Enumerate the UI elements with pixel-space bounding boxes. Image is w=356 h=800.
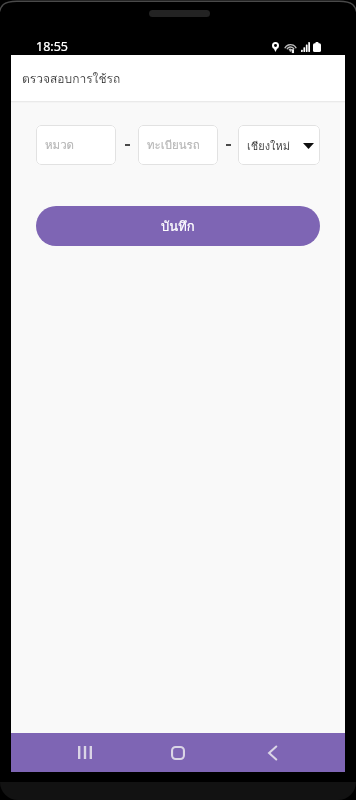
button[interactable]: Back xyxy=(225,733,319,772)
button[interactable]: ทะเบียนรถ xyxy=(138,125,218,165)
staticText: ทะเบียนรถ xyxy=(147,136,200,154)
staticText: ตรวจสอบการใช้รถ xyxy=(22,69,121,88)
button[interactable]: Recent apps xyxy=(38,733,131,772)
button[interactable]: บันทึก xyxy=(36,206,320,246)
staticText: เชียงใหม่ xyxy=(247,137,290,154)
staticText: บันทึก xyxy=(161,216,195,237)
button[interactable]: หมวด xyxy=(36,125,116,165)
staticText: หมวด xyxy=(45,136,75,154)
button[interactable]: เชียงใหม่ xyxy=(238,125,320,165)
staticText: 18:55 xyxy=(36,38,68,55)
button[interactable]: Home xyxy=(131,733,225,772)
